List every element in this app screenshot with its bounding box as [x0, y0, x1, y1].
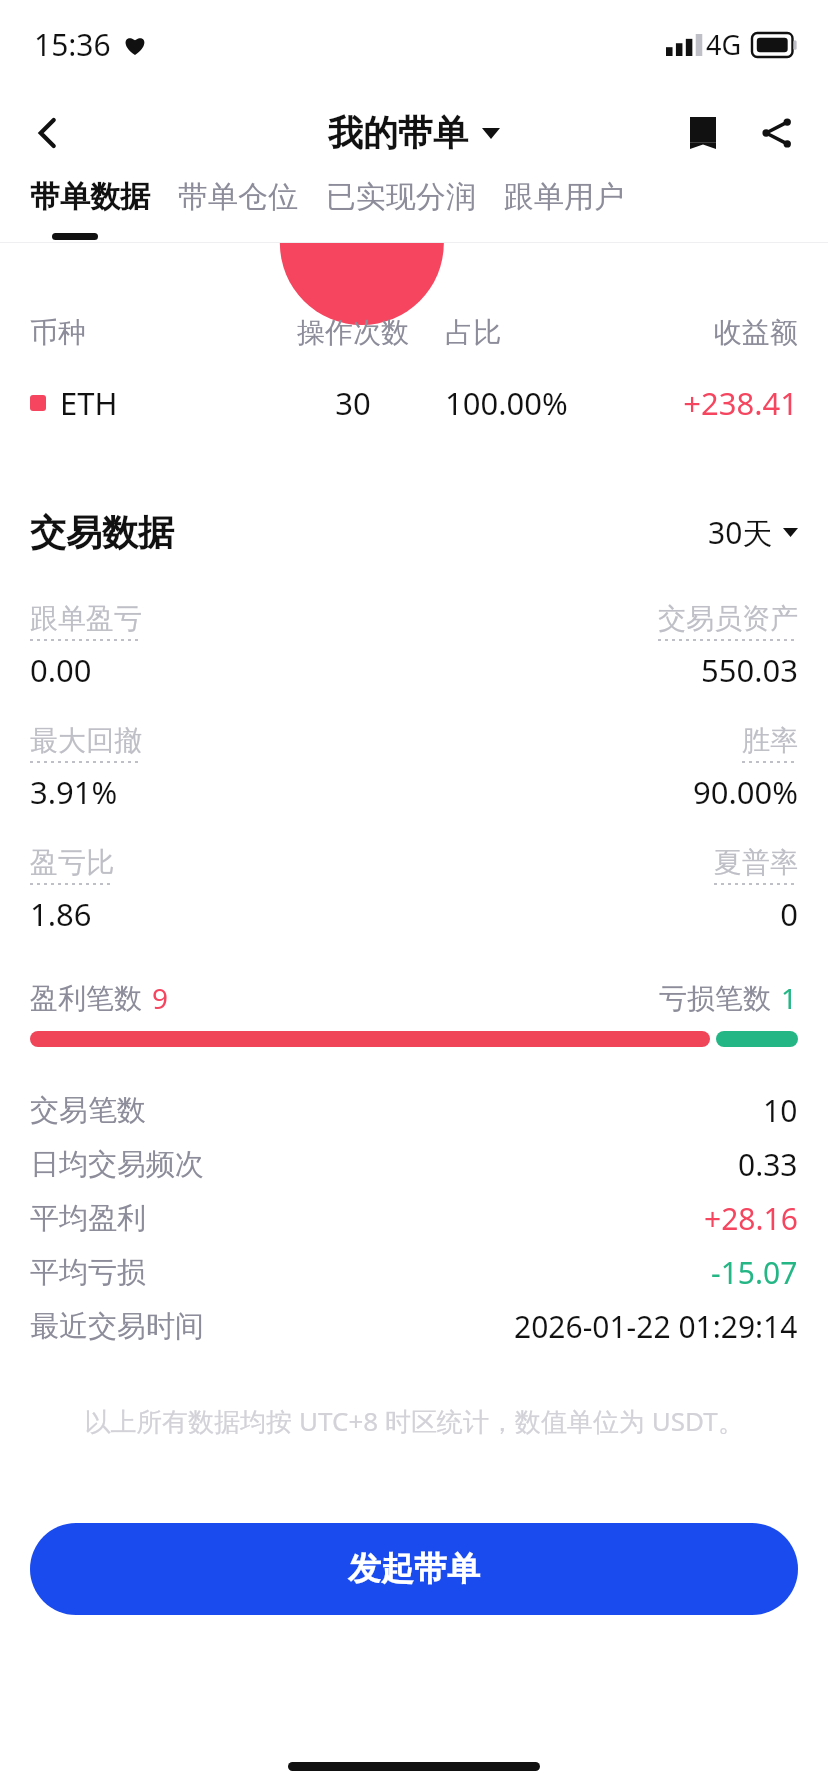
staticText: 30天 [708, 512, 773, 553]
button[interactable]: 我的带单 [328, 111, 500, 155]
staticText: 交易笔数 [30, 1092, 146, 1129]
staticText: 交易员资产 [658, 601, 798, 636]
staticText: 15:36 [34, 24, 111, 65]
staticText: +28.16 [704, 1198, 798, 1239]
button[interactable]: 跟单用户 [504, 178, 624, 242]
staticText: -15.07 [711, 1252, 798, 1293]
staticText: 90.00% [414, 771, 798, 813]
staticText: 最大回撤 [30, 723, 142, 758]
button[interactable]: 平均盈利 [30, 1191, 798, 1245]
staticText: 操作次数 [261, 315, 445, 350]
staticText: 收益额 [614, 315, 798, 350]
staticText: 3.91% [30, 771, 414, 813]
button[interactable]: 交易笔数 [30, 1083, 798, 1137]
staticText: 亏损笔数 [659, 981, 771, 1016]
staticText: 盈亏比 [30, 845, 114, 880]
staticText: 以上所有数据均按 UTC+8 时区统计，数值单位为 USDT。 [30, 1403, 798, 1439]
staticText: 9 [152, 979, 169, 1017]
staticText: 1 [781, 979, 798, 1017]
staticText: ETH [60, 382, 118, 424]
staticText: 日均交易频次 [30, 1146, 204, 1183]
button[interactable]: 30天 [708, 512, 798, 553]
staticText: 占比 [445, 315, 614, 350]
staticText: 0.00 [30, 649, 414, 691]
staticText: 平均盈利 [30, 1200, 146, 1237]
staticText: 发起带单 [348, 1548, 480, 1590]
staticText: 平均亏损 [30, 1254, 146, 1291]
button[interactable]: ETH [30, 382, 798, 424]
staticText: 1.86 [30, 893, 414, 935]
button[interactable]: 已实现分润 [326, 178, 476, 242]
staticText: 2026-01-22 01:29:14 [514, 1306, 798, 1347]
button[interactable]: Back [16, 101, 80, 165]
button[interactable]: Share [748, 104, 806, 162]
staticText: 4G [706, 26, 742, 63]
staticText: 10 [763, 1090, 798, 1131]
staticText: 胜率 [742, 723, 798, 758]
staticText: 0.33 [738, 1144, 798, 1185]
staticText: 550.03 [414, 649, 798, 691]
staticText: 已实现分润 [326, 178, 476, 216]
staticText: 100.00% [445, 382, 614, 424]
button[interactable]: 日均交易频次 [30, 1137, 798, 1191]
staticText: 跟单用户 [504, 178, 624, 216]
button[interactable]: 带单数据 [30, 178, 150, 242]
button[interactable]: 最近交易时间 [30, 1299, 798, 1353]
staticText: 我的带单 [328, 111, 468, 155]
staticText: 交易数据 [30, 510, 174, 555]
staticText: +238.41 [614, 382, 798, 424]
button[interactable]: 带单仓位 [178, 178, 298, 242]
staticText: 跟单盈亏 [30, 601, 142, 636]
staticText: 0 [414, 893, 798, 935]
staticText: 最近交易时间 [30, 1308, 204, 1345]
button[interactable]: 平均亏损 [30, 1245, 798, 1299]
staticText: 30 [261, 382, 445, 424]
staticText: 夏普率 [714, 845, 798, 880]
staticText: 带单仓位 [178, 178, 298, 216]
staticText: 盈利笔数 [30, 981, 142, 1016]
button[interactable]: Bookmark [674, 104, 732, 162]
staticText: 币种 [30, 315, 261, 350]
button[interactable]: 发起带单 [30, 1523, 798, 1615]
staticText: 带单数据 [30, 178, 150, 216]
